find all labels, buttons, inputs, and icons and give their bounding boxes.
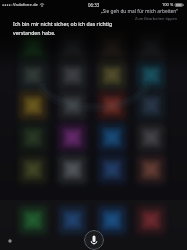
button[interactable]: „Sie geh du mal für mich arbeiten“ [0,8,187,21]
staticText: verstanden habe. [13,29,56,36]
staticText: Vodafone.de [13,2,38,8]
staticText: Ich bin mir nicht sicher, ob ich das ric… [13,20,113,27]
staticText: 06:33 [88,2,100,8]
staticText: Zum Bearbeiten tippen [135,16,178,21]
staticText: „Sie geh du mal für mich arbeiten“ [100,8,178,15]
button[interactable]: Microphone [84,230,104,250]
staticText: 100 % [162,2,174,7]
